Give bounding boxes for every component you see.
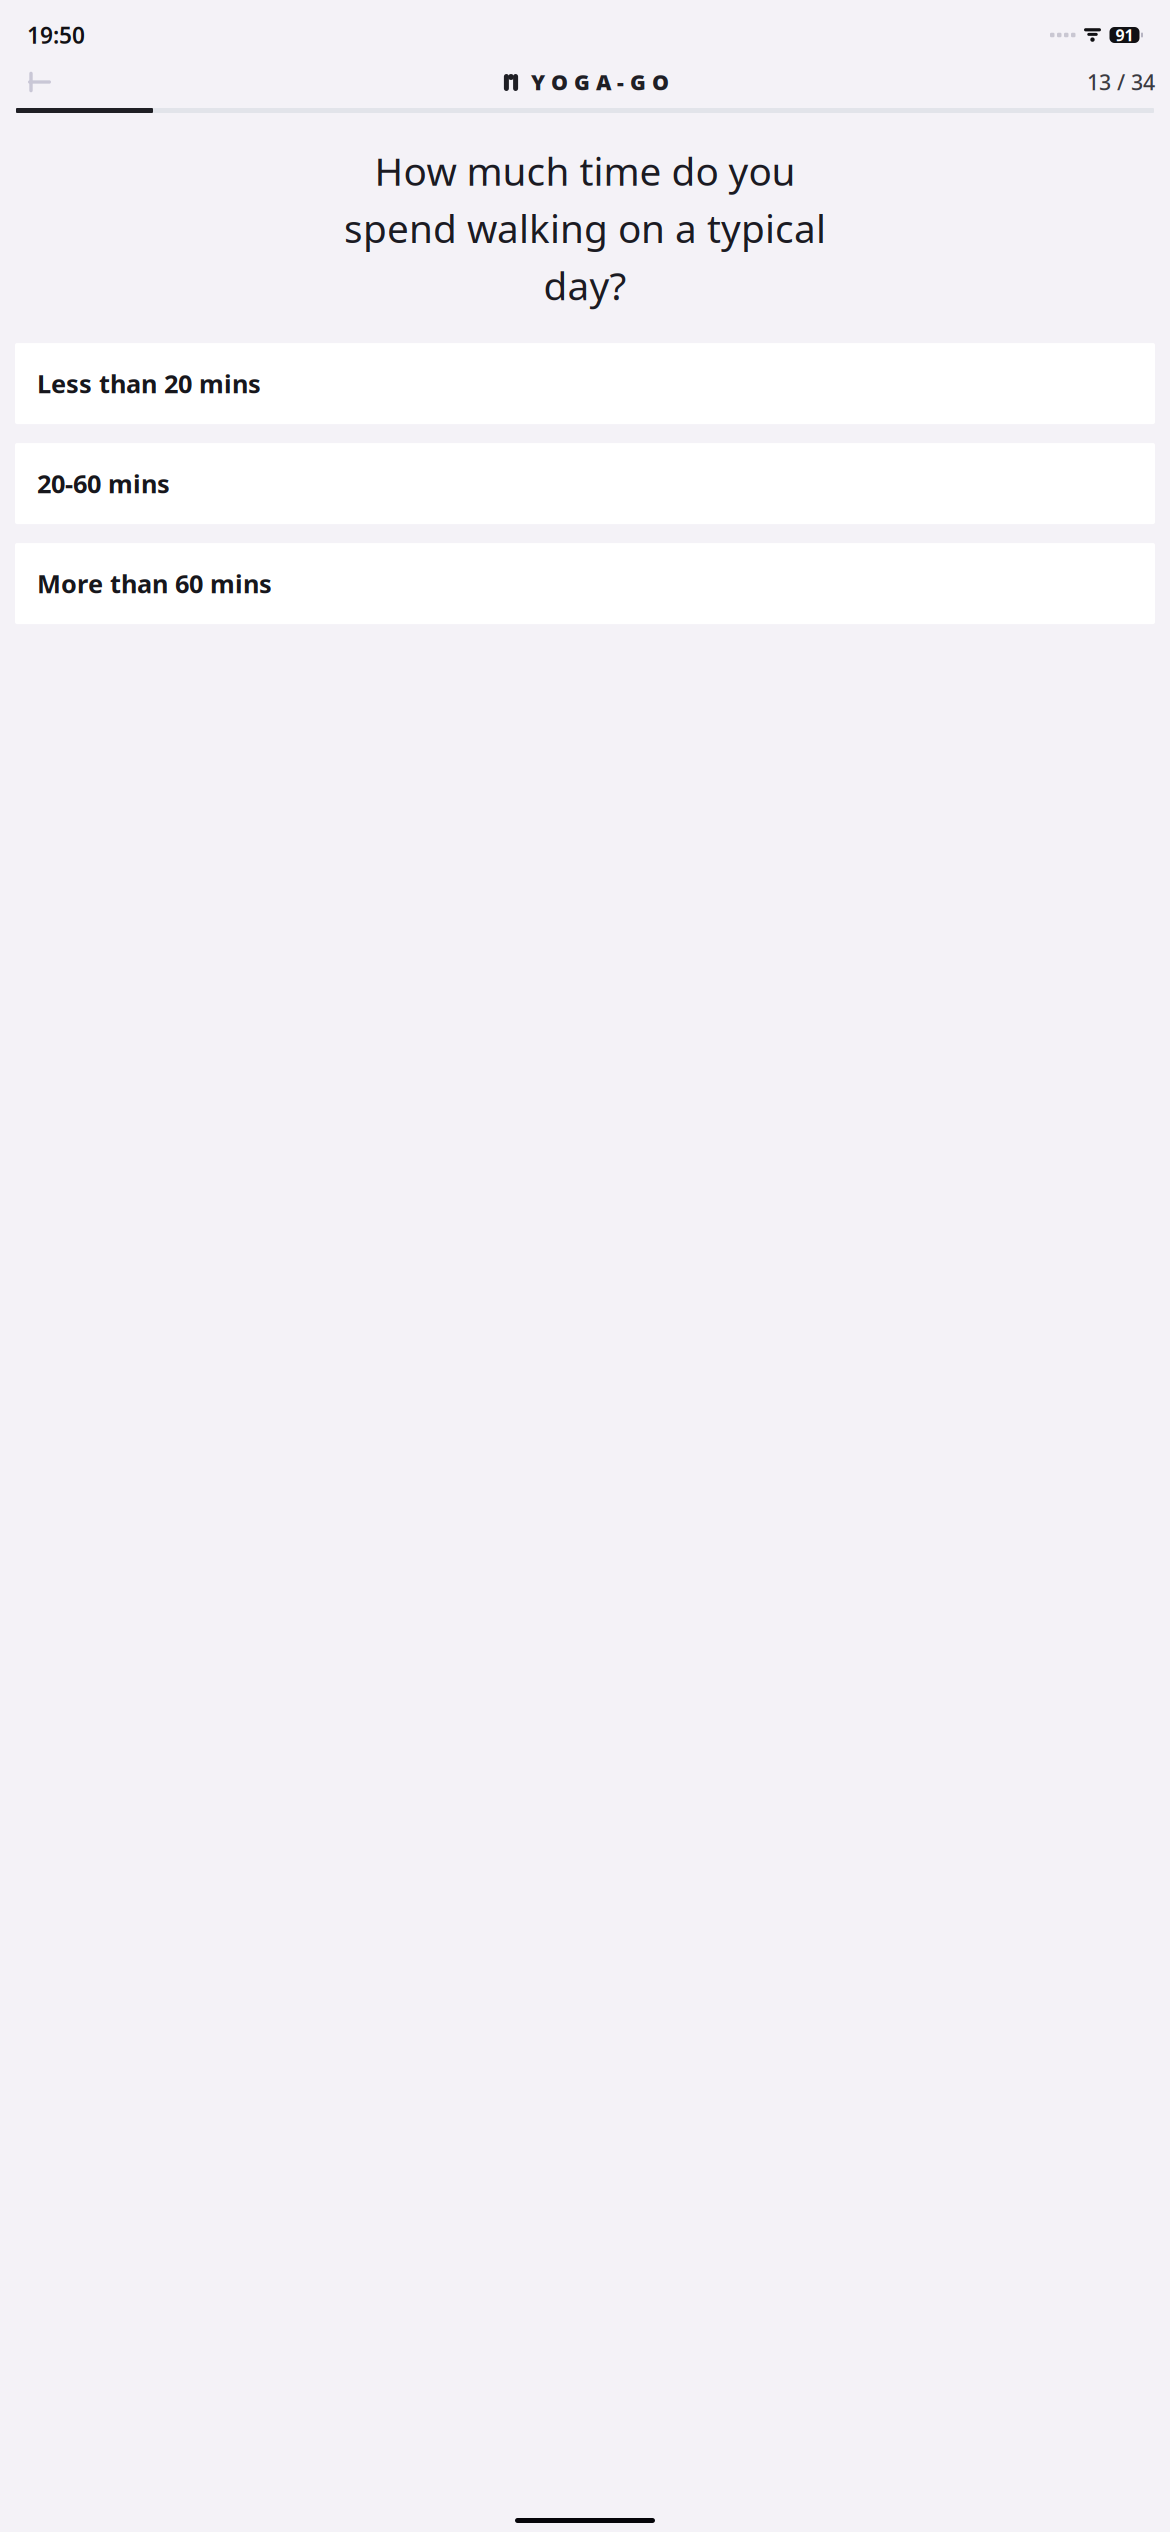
staticText: 20-60 mins xyxy=(37,467,170,500)
staticText: More than 60 mins xyxy=(37,567,272,600)
button[interactable]: More than 60 mins xyxy=(15,543,1155,624)
button[interactable]: 20-60 mins xyxy=(15,443,1155,524)
staticText: 13 / 34 xyxy=(1087,68,1155,96)
staticText: 19:50 xyxy=(27,20,85,50)
staticText: 91 xyxy=(1115,24,1133,46)
staticText: How much time do you xyxy=(374,145,795,196)
staticText: day? xyxy=(543,260,626,311)
button[interactable]: Less than 20 mins xyxy=(15,343,1155,424)
staticText: Y O G A - G O xyxy=(531,68,669,96)
staticText: Less than 20 mins xyxy=(37,367,261,400)
button[interactable]: Back xyxy=(15,60,59,104)
staticText: spend walking on a typical xyxy=(344,202,826,254)
